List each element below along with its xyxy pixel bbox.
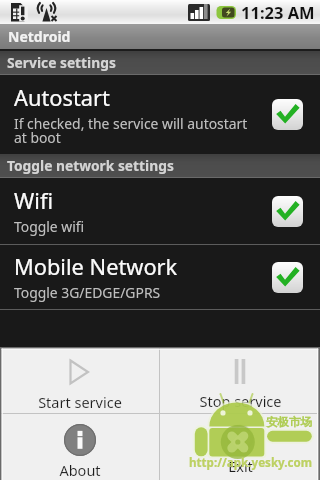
button[interactable]: Exit [160,414,320,480]
other: Start service [69,359,90,385]
staticText: Start service [38,392,122,412]
staticText: Service settings [7,53,116,72]
staticText: 11:23 AM [241,1,315,23]
button[interactable]: Toggle setting [272,196,303,227]
button[interactable]: Toggle setting [272,99,303,130]
staticText: Toggle network settings [7,156,174,175]
button[interactable]: Autostart [0,75,320,154]
staticText: http://apk.yesky.com [189,455,313,471]
button[interactable]: Stop service [160,347,320,413]
other: Stop service [232,359,248,384]
other: Exit [226,424,254,452]
staticText: Stop service [199,391,282,411]
staticText: Toggle wifi [14,217,85,236]
button[interactable]: Toggle setting [272,262,303,293]
button[interactable]: Start service [0,347,159,413]
staticText: About [59,460,101,480]
button[interactable]: Mobile Network [0,245,320,309]
button[interactable]: About [0,414,159,480]
staticText: If checked, the service will autostart a… [14,114,248,147]
staticText: Exit [228,456,253,476]
staticText: Toggle 3G/EDGE/GPRS [14,283,161,302]
staticText: 安极市场 [266,415,312,429]
staticText: Wifi [14,186,54,216]
other: About [64,424,96,456]
button[interactable]: Wifi [0,178,320,244]
staticText: Autostart [14,83,110,113]
staticText: Mobile Network [14,252,178,282]
staticText: Netdroid [8,27,71,46]
